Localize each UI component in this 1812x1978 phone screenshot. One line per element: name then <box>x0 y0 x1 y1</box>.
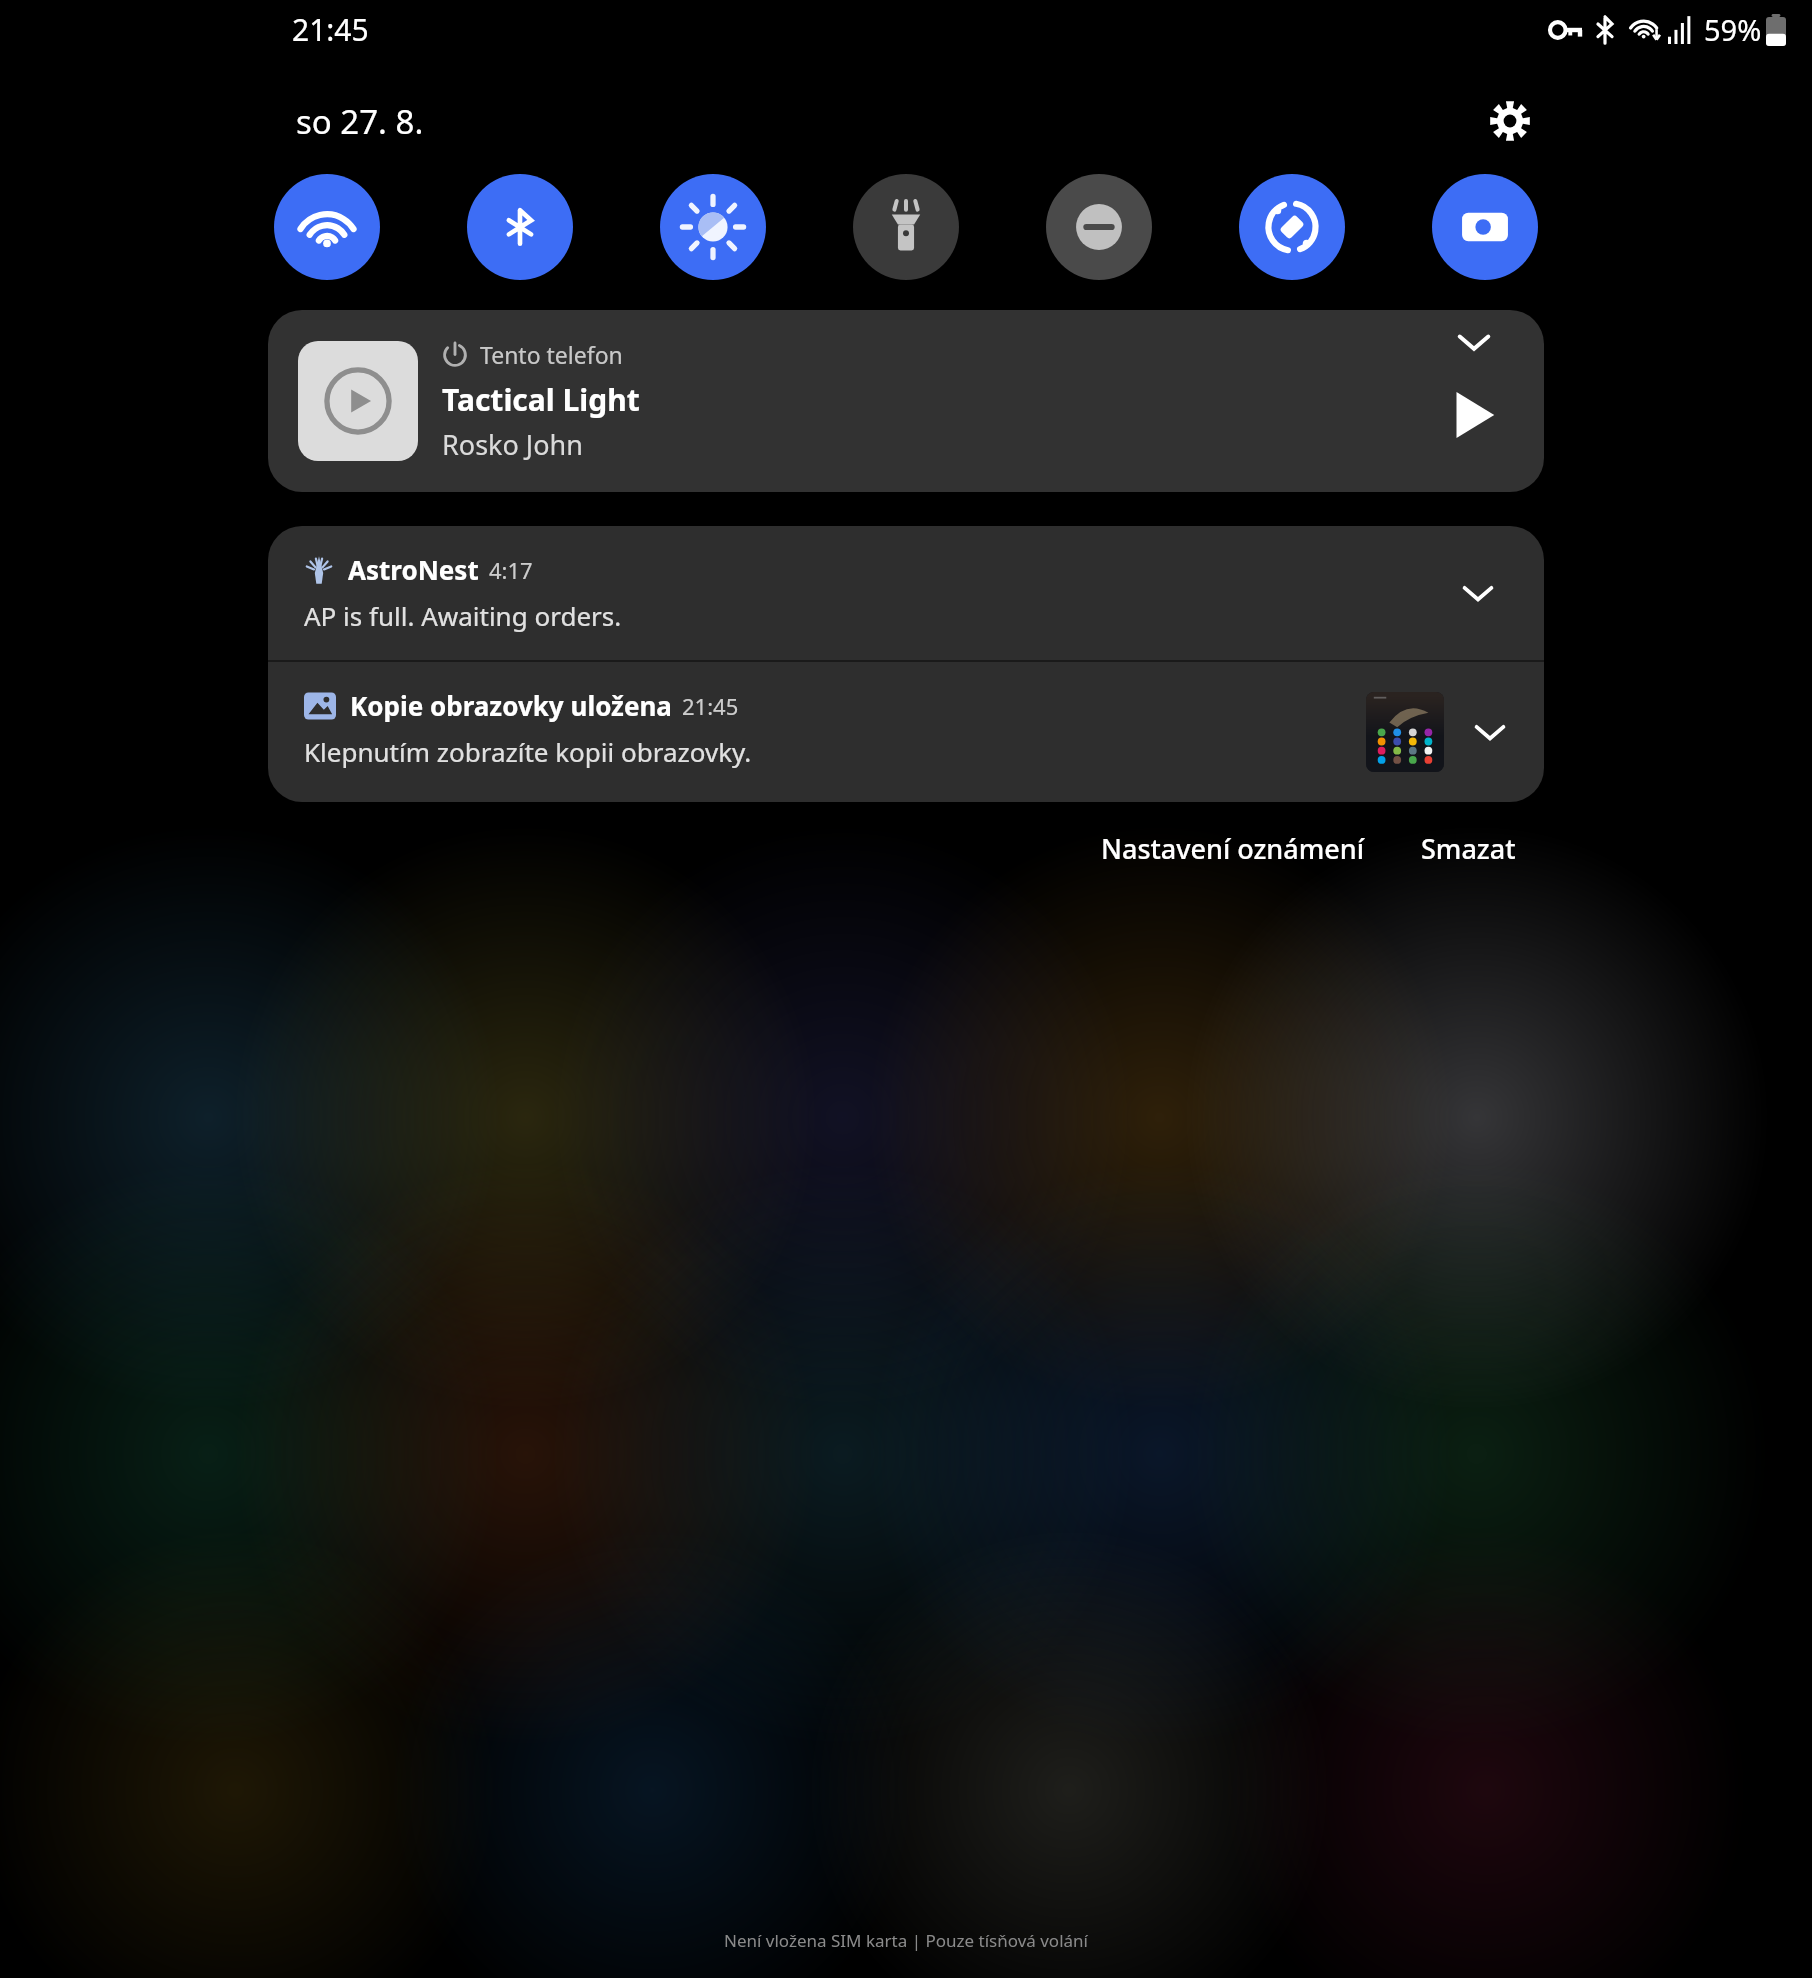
staticText: AstroNest <box>348 552 479 587</box>
button[interactable]: Expand <box>1448 563 1508 623</box>
staticText: 21:45 <box>682 691 739 721</box>
staticText: Nastavení oznámení <box>1101 830 1365 867</box>
button[interactable]: Auto rotate <box>1239 174 1345 280</box>
button[interactable]: Flashlight <box>853 174 959 280</box>
staticText: so 27. 8. <box>296 99 424 144</box>
button[interactable]: Expand <box>1460 702 1520 762</box>
staticText: 21:45 <box>292 9 369 50</box>
staticText: 59% <box>1704 10 1762 49</box>
staticText: Kopie obrazovky uložena <box>350 688 672 723</box>
staticText: Rosko John <box>442 426 583 463</box>
button[interactable]: Do not disturb <box>1046 174 1152 280</box>
button[interactable]: Settings <box>1476 87 1544 155</box>
button[interactable]: Tento telefon <box>268 310 1544 492</box>
button[interactable]: AstroNest <box>268 526 1544 660</box>
button[interactable]: Brightness <box>660 174 766 280</box>
staticText: AP is full. Awaiting orders. <box>304 598 622 633</box>
button[interactable]: Kopie obrazovky uložena <box>268 662 1544 802</box>
staticText: Tactical Light <box>442 379 640 420</box>
button[interactable]: Camera <box>1432 174 1538 280</box>
button[interactable]: Smazat <box>1407 818 1530 879</box>
staticText: Není vložena SIM karta | Pouze tísňová v… <box>724 1929 1088 1952</box>
staticText: 4:17 <box>489 555 533 585</box>
button[interactable]: Bluetooth <box>467 174 573 280</box>
staticText: Smazat <box>1421 830 1516 867</box>
staticText: Tento telefon <box>480 339 623 370</box>
staticText: Klepnutím zobrazíte kopii obrazovky. <box>304 734 752 769</box>
button[interactable]: Expand <box>1442 310 1506 374</box>
button[interactable]: Play <box>1435 376 1513 454</box>
button[interactable]: Nastavení oznámení <box>1087 818 1379 879</box>
button[interactable]: Wi-Fi <box>274 174 380 280</box>
